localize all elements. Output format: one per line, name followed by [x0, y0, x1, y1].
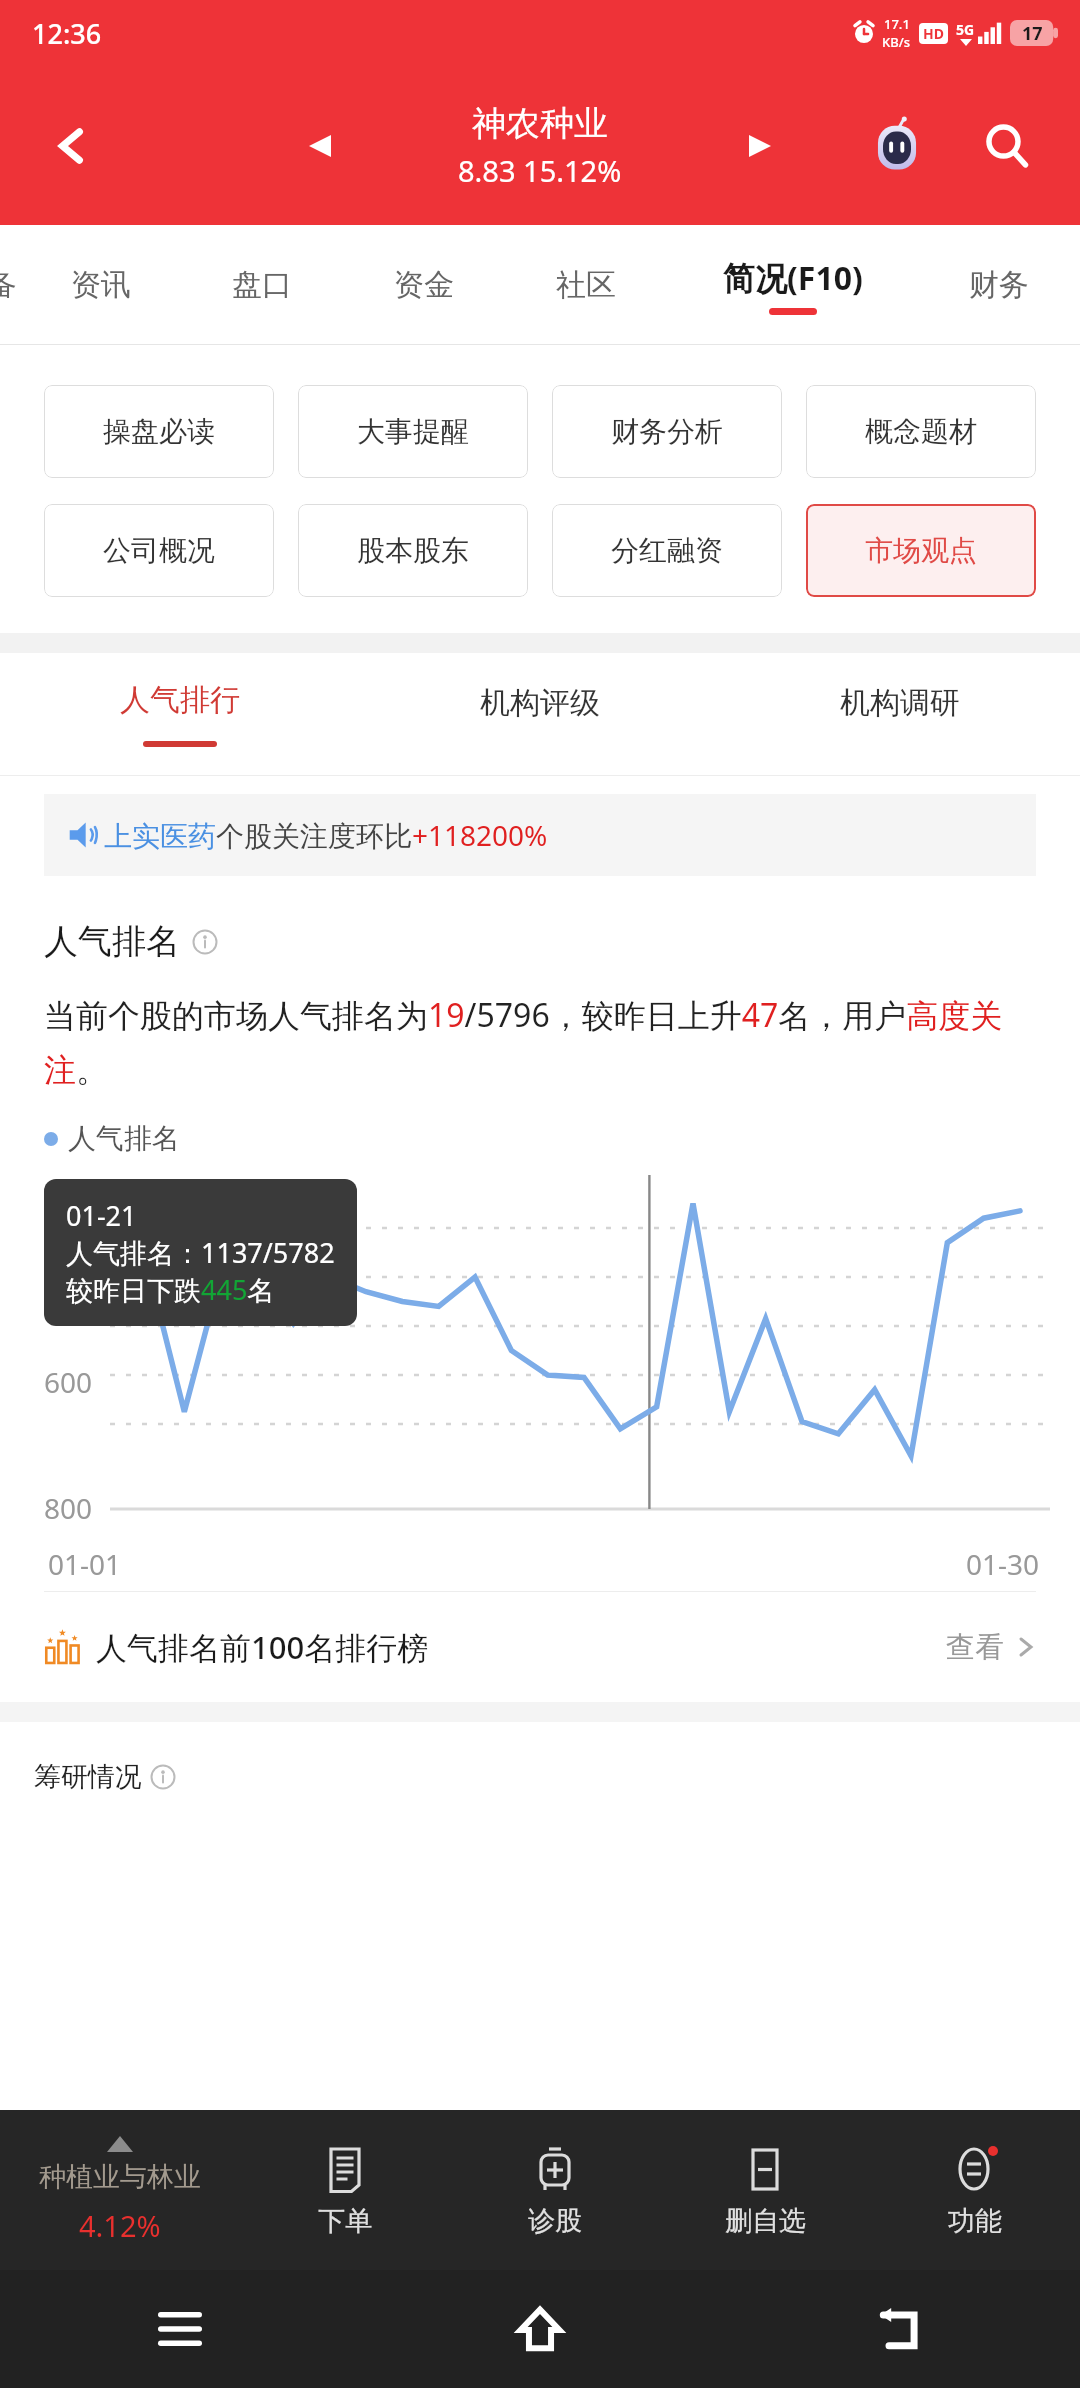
staticText: 删自选 [725, 2204, 806, 2238]
staticText: 人气排名：1137/5782 [66, 1234, 335, 1271]
staticText: 4.12% [79, 2206, 161, 2245]
staticText: 8.83 15.12% [458, 151, 622, 190]
staticText: 12:36 [32, 15, 102, 52]
staticText: HD [923, 24, 944, 43]
staticText: 诊股 [528, 2204, 582, 2238]
button[interactable]: 功能 [870, 2110, 1080, 2270]
staticText: 01-21 [66, 1197, 137, 1234]
button[interactable]: 概念题材 [806, 385, 1036, 478]
staticText: 功能 [948, 2204, 1002, 2238]
staticText: 人气排行 [120, 681, 240, 719]
staticText: 查看 [946, 1629, 1004, 1666]
button[interactable]: 资金 [343, 225, 505, 345]
button[interactable]: Next stock [730, 116, 790, 176]
staticText: 市场观点 [865, 533, 977, 568]
staticText: 上实医药个股关注度环比+118200% [104, 816, 548, 854]
button[interactable]: 分红融资 [552, 504, 782, 597]
button[interactable]: 资讯 [20, 225, 181, 345]
button[interactable]: 财务 [918, 225, 1080, 345]
button[interactable]: Back [40, 114, 104, 178]
staticText: 机构评级 [480, 684, 600, 722]
staticText: 机构调研 [840, 684, 960, 722]
staticText: 社区 [556, 266, 616, 304]
staticText: 17 [1022, 21, 1043, 46]
button[interactable]: 股本股东 [298, 504, 528, 597]
staticText: 财务分析 [611, 414, 723, 449]
button[interactable]: 盘口 [181, 225, 343, 345]
button[interactable]: 上实医药个股关注度环比+118200% [68, 794, 1012, 876]
staticText: 5G [956, 20, 975, 39]
staticText: 股本股东 [357, 533, 469, 568]
button[interactable]: 社区 [505, 225, 667, 345]
button[interactable]: 操盘必读 [44, 385, 274, 478]
staticText: 筹研情况 [34, 1760, 142, 1794]
staticText: 17.1 [884, 15, 910, 33]
staticText: 操盘必读 [103, 414, 215, 449]
staticText: 800 [44, 1489, 93, 1527]
button[interactable]: 大事提醒 [298, 385, 528, 478]
button[interactable]: Back [720, 2270, 1080, 2388]
button[interactable]: 备 [0, 225, 20, 345]
staticText: 人气排名前100名排行榜 [96, 1626, 429, 1668]
staticText: 财务 [969, 266, 1029, 304]
staticText: 资金 [394, 266, 454, 304]
staticText: 较昨日下跌445名 [66, 1271, 275, 1308]
staticText: 资讯 [71, 266, 131, 304]
button[interactable]: Recents [0, 2270, 360, 2388]
staticText: 01-01 [48, 1545, 122, 1583]
button[interactable]: 财务分析 [552, 385, 782, 478]
button[interactable]: 简况(F10) [667, 225, 918, 345]
staticText: 人气排名 [68, 1121, 180, 1156]
button[interactable]: Search [972, 111, 1042, 181]
staticText: 神农种业 [472, 102, 608, 145]
staticText: 简况(F10) [723, 256, 863, 300]
staticText: 600 [44, 1363, 93, 1401]
staticText: 分红融资 [611, 533, 723, 568]
button[interactable]: 人气排名前100名排行榜 [44, 1592, 1036, 1702]
button[interactable]: Previous stock [290, 116, 350, 176]
staticText: 人气排名 [44, 920, 180, 963]
staticText: KB/s [882, 33, 911, 51]
button[interactable]: 种植业与林业 [0, 2110, 240, 2270]
staticText: 备 [0, 266, 6, 304]
staticText: 公司概况 [103, 533, 215, 568]
button[interactable]: 机构调研 [720, 653, 1080, 775]
staticText: 当前个股的市场人气排名为19/5796，较昨日上升47名，用户高度关注。 [44, 993, 1040, 1091]
button[interactable]: 删自选 [660, 2110, 870, 2270]
button[interactable]: 机构评级 [360, 653, 720, 775]
button[interactable]: AI assistant [862, 111, 932, 181]
button[interactable]: 诊股 [450, 2110, 660, 2270]
button[interactable]: 市场观点 [806, 504, 1036, 597]
button[interactable]: 公司概况 [44, 504, 274, 597]
button[interactable]: 人气排行 [0, 653, 360, 775]
staticText: 概念题材 [865, 414, 977, 449]
button[interactable]: Home [360, 2270, 720, 2388]
staticText: 01-30 [966, 1545, 1040, 1583]
staticText: 种植业与林业 [39, 2160, 201, 2194]
button[interactable]: 下单 [240, 2110, 450, 2270]
staticText: 盘口 [232, 266, 292, 304]
staticText: 大事提醒 [357, 414, 469, 449]
staticText: 下单 [318, 2204, 372, 2238]
